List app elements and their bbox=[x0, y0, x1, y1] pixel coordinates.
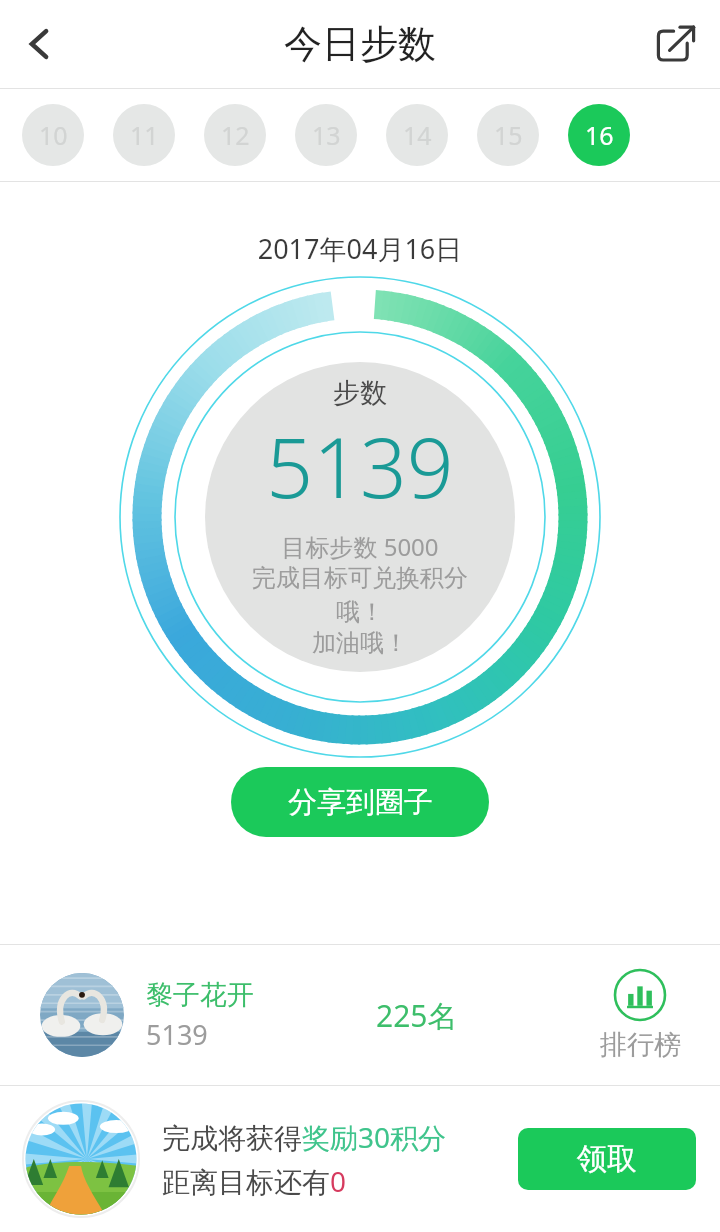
staticText: 2017年04月16日 bbox=[0, 230, 720, 267]
staticText: 黎子花开 bbox=[146, 978, 254, 1012]
button[interactable]: 15 bbox=[477, 104, 539, 166]
button[interactable]: 12 bbox=[204, 104, 266, 166]
staticText: 5139 bbox=[146, 1016, 208, 1053]
button[interactable]: 分享到圈子 bbox=[231, 767, 489, 837]
staticText: 225名 bbox=[376, 995, 458, 1036]
staticText: 加油哦！ bbox=[235, 628, 485, 658]
button[interactable]: 10 bbox=[22, 104, 84, 166]
button[interactable]: 11 bbox=[113, 104, 175, 166]
button[interactable]: 13 bbox=[295, 104, 357, 166]
staticText: 排行榜 bbox=[600, 1028, 681, 1062]
staticText: 完成目标可兑换积分哦！ bbox=[235, 563, 485, 628]
staticText: 15 bbox=[494, 118, 523, 152]
staticText: 11 bbox=[130, 118, 159, 152]
staticText: 领取 bbox=[577, 1140, 637, 1178]
staticText: 分享到圈子 bbox=[288, 784, 433, 821]
staticText: 步数 bbox=[235, 376, 485, 410]
button[interactable]: 领取 bbox=[518, 1128, 696, 1190]
staticText: 今日步数 bbox=[284, 20, 436, 68]
staticText: 16 bbox=[585, 118, 614, 152]
staticText: 距离目标还有0 bbox=[162, 1162, 347, 1200]
button[interactable]: Share bbox=[644, 12, 708, 76]
staticText: 13 bbox=[312, 118, 341, 152]
staticText: 10 bbox=[39, 118, 68, 152]
staticText: 目标步数 5000 bbox=[235, 530, 485, 563]
staticText: 5139 bbox=[235, 410, 485, 522]
staticText: 14 bbox=[403, 118, 432, 152]
staticText: 完成将获得奖励30积分 bbox=[162, 1118, 447, 1156]
button[interactable]: 14 bbox=[386, 104, 448, 166]
button[interactable]: Back bbox=[8, 12, 72, 76]
button[interactable]: 16 bbox=[568, 104, 630, 166]
staticText: 12 bbox=[221, 118, 250, 152]
button[interactable]: 黎子花开 bbox=[0, 945, 720, 1085]
